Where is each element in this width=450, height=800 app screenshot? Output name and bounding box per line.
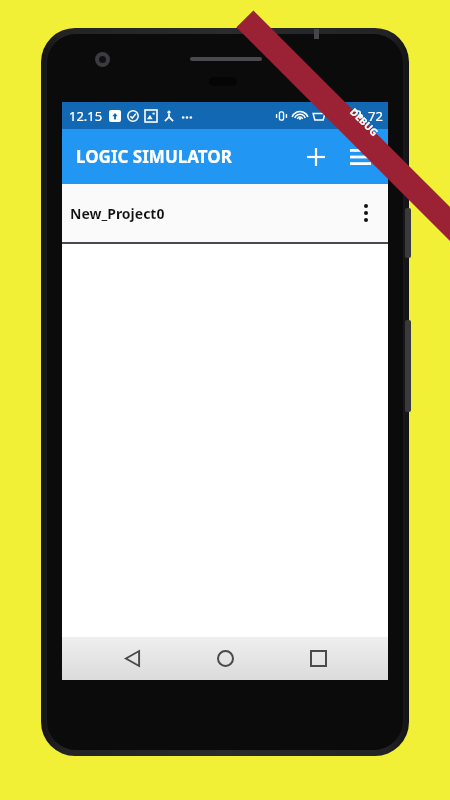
staticText: DEBUG <box>347 105 382 139</box>
staticText: 72 <box>368 107 383 125</box>
button[interactable]: New_Project0 <box>62 184 388 242</box>
button[interactable]: Back <box>109 637 155 680</box>
staticText: 12.15 <box>69 107 103 125</box>
button[interactable]: Home <box>202 637 248 680</box>
button[interactable]: More options <box>344 191 388 235</box>
button[interactable]: Recents <box>295 637 341 680</box>
staticText: LOGIC SIMULATOR <box>76 145 232 168</box>
staticText: New_Project0 <box>70 204 165 223</box>
button[interactable]: Add project <box>294 135 338 179</box>
button[interactable]: Menu <box>338 135 382 179</box>
